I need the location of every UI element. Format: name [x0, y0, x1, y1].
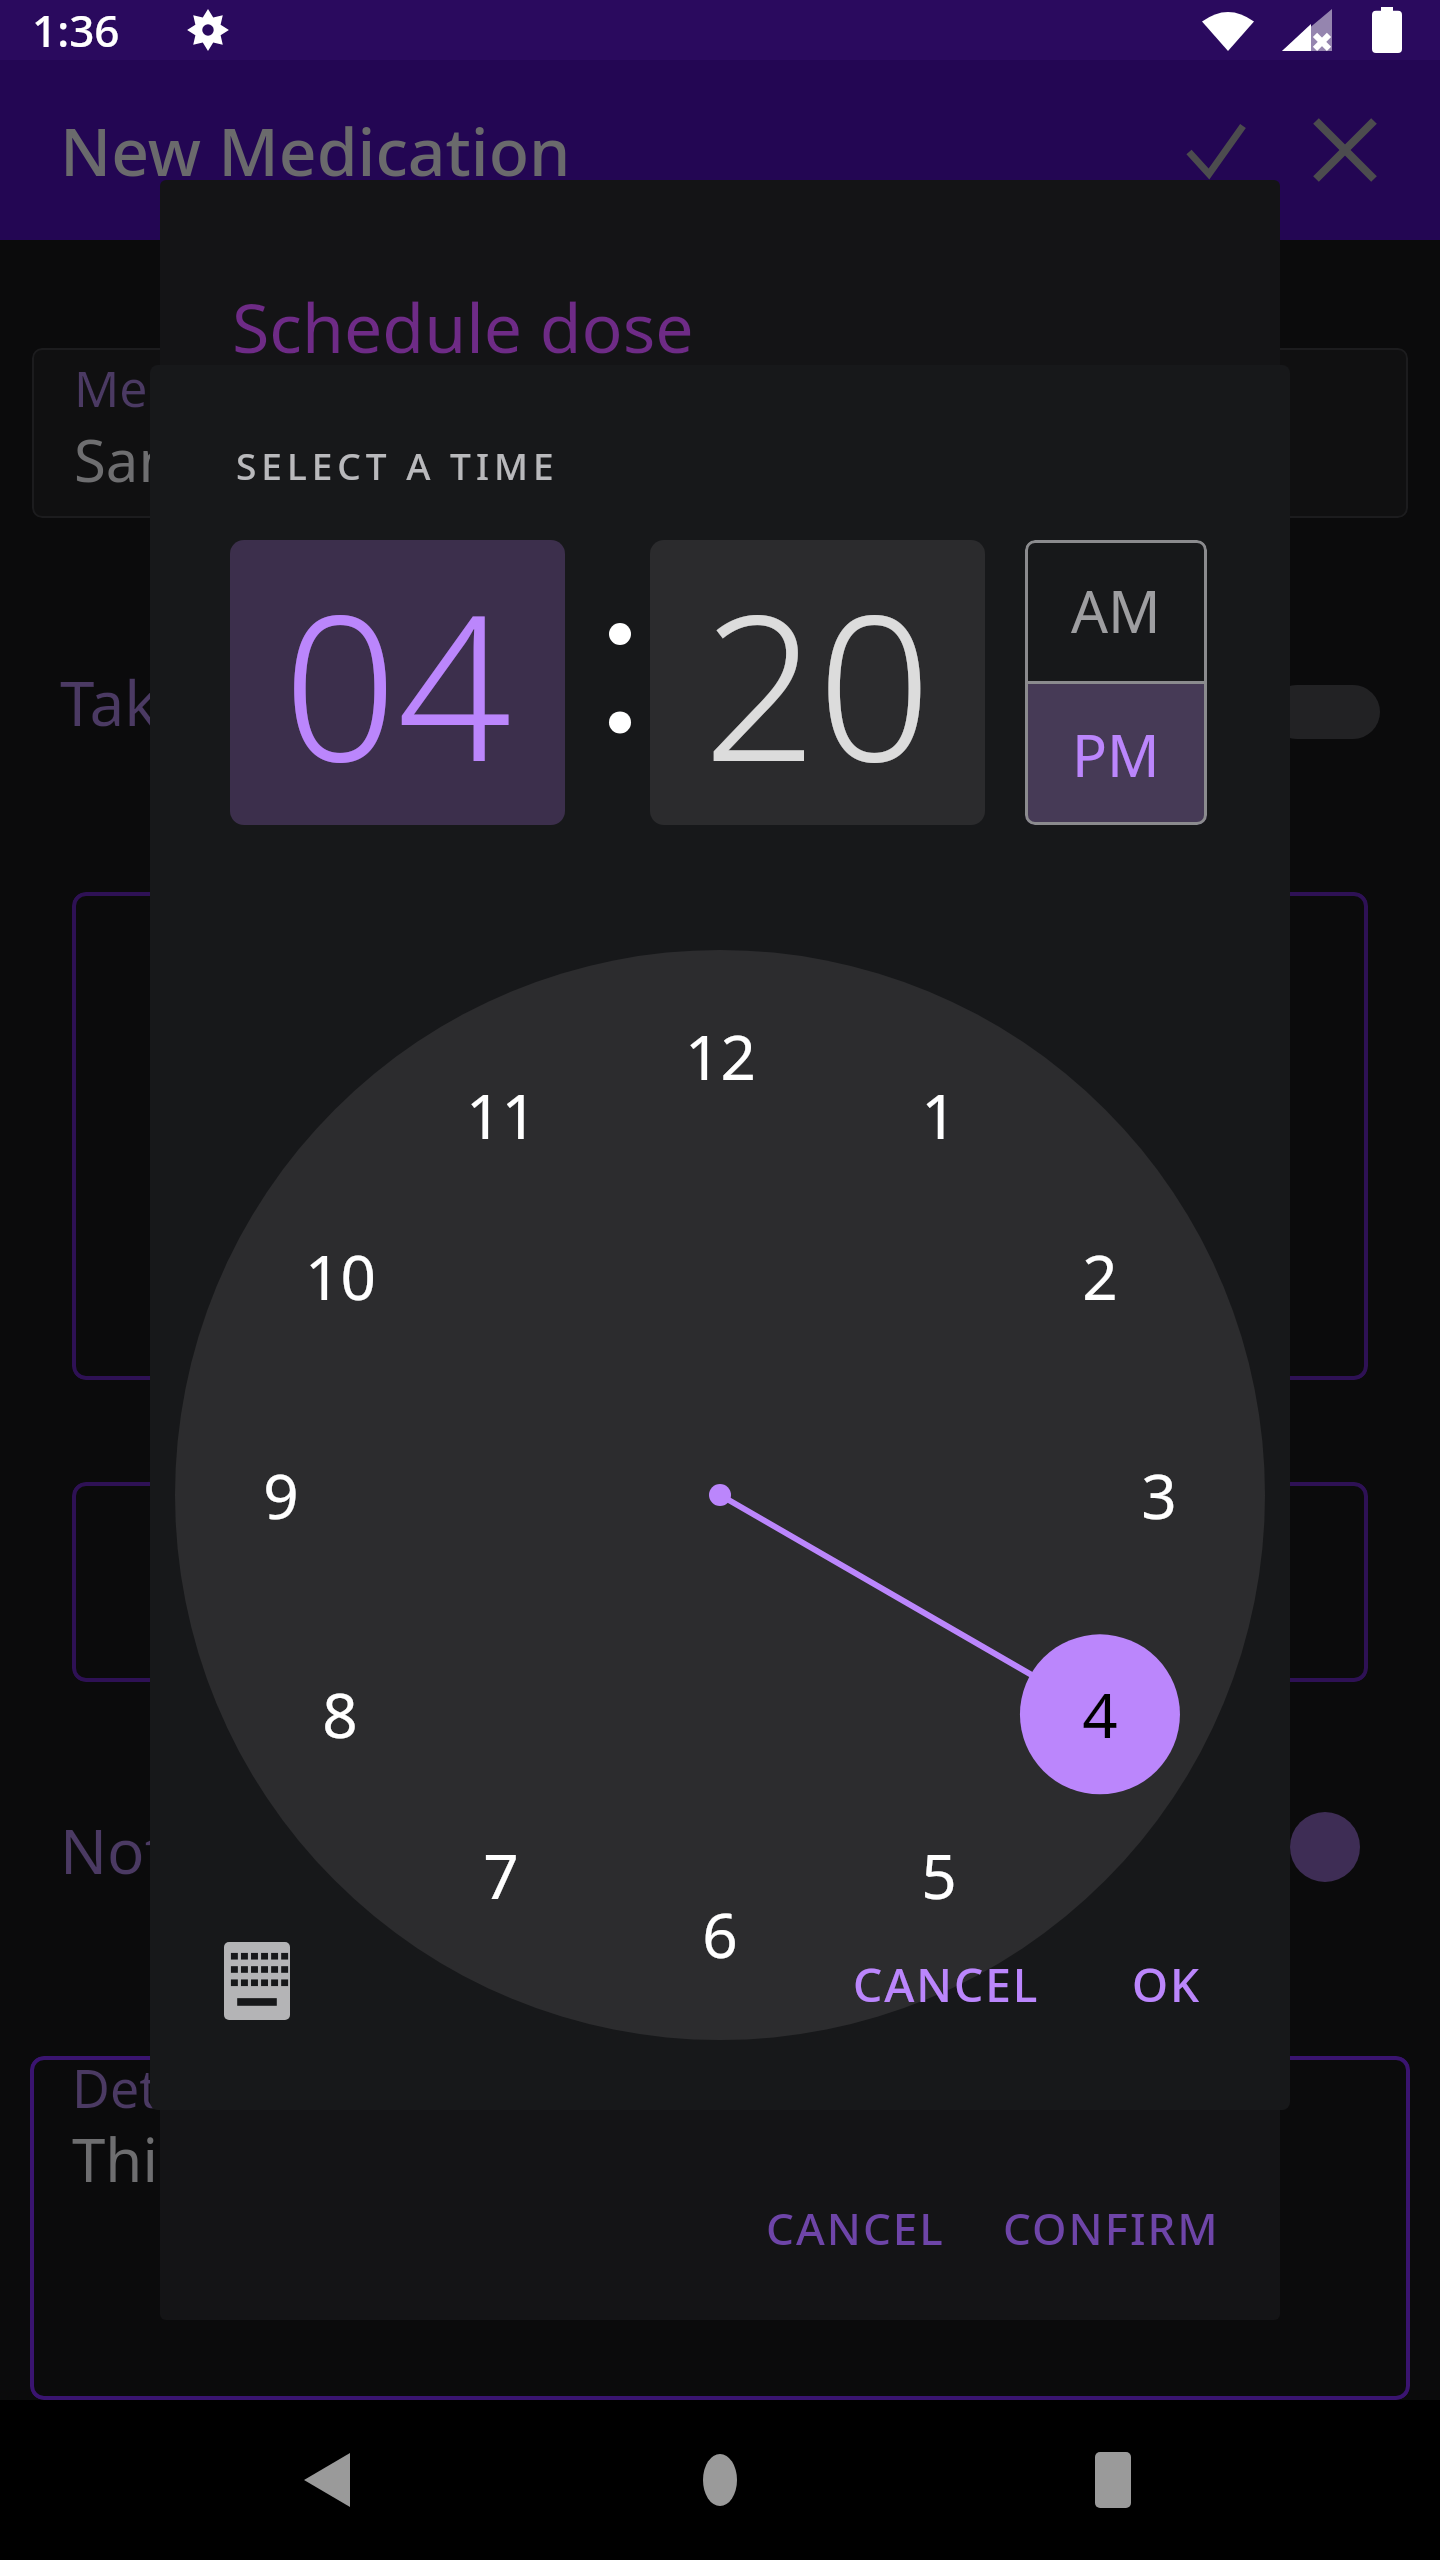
staticText: This [72, 2118, 187, 2200]
button[interactable]: Close [1290, 95, 1400, 205]
button[interactable]: 04 [230, 540, 565, 825]
button[interactable] [72, 1482, 1368, 1682]
staticText: 10 [305, 1234, 376, 1318]
staticText: PM [1072, 715, 1160, 794]
staticText: Details [72, 2056, 239, 2123]
button[interactable]: AM [1025, 540, 1207, 681]
staticText: 3 [1141, 1453, 1177, 1537]
staticText: 8 [322, 1672, 358, 1756]
button[interactable]: Recent apps [1058, 2425, 1168, 2535]
button[interactable]: Take with food toggle [1270, 685, 1380, 739]
staticText: Medication name [74, 354, 483, 422]
button[interactable]: CANCEL [742, 2188, 969, 2268]
button[interactable]: Details [30, 2056, 1410, 2400]
staticText: 6 [702, 1892, 738, 1976]
button[interactable]: CONFIRM [979, 2188, 1244, 2268]
button[interactable]: CANCEL [827, 1933, 1066, 2036]
staticText: 11 [466, 1073, 537, 1157]
staticText: 12 [685, 1014, 756, 1098]
button[interactable]: OK [1106, 1933, 1228, 2036]
staticText: CANCEL [766, 2198, 945, 2258]
staticText: AM [1071, 571, 1161, 650]
staticText: 5 [921, 1833, 957, 1917]
staticText: 7 [483, 1833, 519, 1917]
staticText: Take with food [60, 660, 485, 744]
button[interactable]: Save [1160, 95, 1270, 205]
staticText: Sample [74, 420, 276, 499]
staticText: 4 [1082, 1672, 1118, 1756]
button[interactable]: Switch to keyboard input [202, 1933, 312, 2029]
button[interactable]: Add [1290, 1812, 1360, 1882]
button[interactable]: Back [272, 2425, 382, 2535]
staticText: 1 [921, 1073, 957, 1157]
staticText: 1:36 [32, 0, 120, 60]
staticText: 9 [263, 1453, 299, 1537]
staticText: CONFIRM [1003, 2198, 1220, 2258]
staticText: 20 [703, 547, 932, 819]
staticText: Notes [60, 1808, 232, 1892]
staticText: OK [1132, 1953, 1202, 2016]
button[interactable]: 20 [650, 540, 985, 825]
staticText: New Medication [60, 105, 571, 195]
staticText: CANCEL [853, 1953, 1040, 2016]
staticText: SELECT A TIME [236, 440, 559, 490]
button[interactable]: Medication name [32, 348, 1408, 518]
staticText: 04 [283, 547, 512, 819]
button[interactable] [72, 892, 1368, 1380]
staticText: Schedule dose [232, 280, 694, 373]
button[interactable]: Home [665, 2425, 775, 2535]
button[interactable]: PM [1025, 684, 1207, 825]
staticText: 2 [1082, 1234, 1118, 1318]
